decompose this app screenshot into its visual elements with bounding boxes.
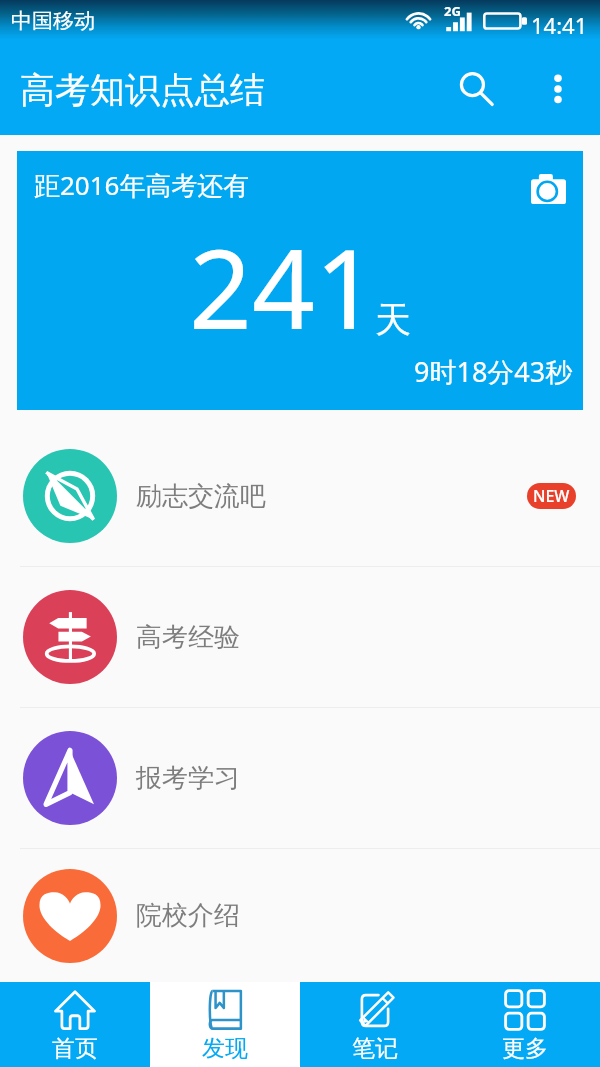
staticText: 更多 — [502, 1034, 548, 1063]
button[interactable]: 发现 — [150, 982, 300, 1067]
button[interactable]: 笔记 — [300, 982, 450, 1067]
staticText: 14:41 — [531, 10, 588, 40]
staticText: 高考经验 — [136, 621, 240, 654]
staticText: NEW — [533, 485, 570, 507]
button[interactable]: 高考经验 — [0, 567, 600, 707]
button[interactable]: 更多 — [450, 982, 600, 1067]
button[interactable]: Camera — [525, 166, 571, 212]
staticText: 院校介绍 — [136, 899, 240, 932]
staticText: 9时18分43秒 — [414, 353, 573, 390]
staticText: 高考知识点总结 — [20, 68, 265, 112]
button[interactable]: 距2016年高考还有 — [17, 151, 583, 410]
button[interactable]: 院校介绍 — [0, 849, 600, 982]
staticText: 中国移动 — [11, 8, 95, 34]
staticText: 距2016年高考还有 — [34, 167, 250, 203]
staticText: 首页 — [52, 1034, 98, 1063]
staticText: 笔记 — [352, 1034, 398, 1063]
button[interactable]: 报考学习 — [0, 708, 600, 848]
staticText: 2G — [444, 2, 461, 20]
staticText: 发现 — [202, 1034, 248, 1063]
staticText: 励志交流吧 — [136, 480, 266, 513]
button[interactable]: More options — [523, 55, 593, 125]
staticText: 天 — [375, 297, 411, 342]
button[interactable]: 首页 — [0, 982, 150, 1067]
staticText: 241 — [189, 211, 378, 361]
button[interactable]: 励志交流吧 — [0, 426, 600, 566]
staticText: 报考学习 — [136, 762, 240, 795]
button[interactable]: Search — [442, 55, 512, 125]
